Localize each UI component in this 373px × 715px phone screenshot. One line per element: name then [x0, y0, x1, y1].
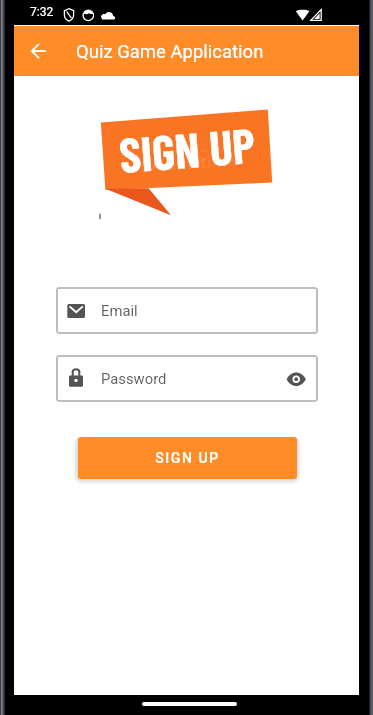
staticText: Password	[101, 370, 167, 387]
staticText: SIGN UP	[117, 114, 257, 182]
button[interactable]: Email	[56, 287, 318, 334]
button[interactable]: Back	[18, 30, 60, 72]
staticText: Quiz Game Application	[76, 41, 264, 63]
button[interactable]: SIGN UP	[78, 437, 297, 479]
staticText: Dreamstime	[140, 151, 237, 177]
staticText: Email	[101, 302, 138, 319]
staticText: 7:32	[30, 5, 54, 19]
button[interactable]: Show password	[279, 363, 311, 395]
staticText: SIGN UP	[155, 450, 220, 466]
button[interactable]: Password	[56, 355, 318, 402]
